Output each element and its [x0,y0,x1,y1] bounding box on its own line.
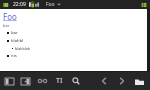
button[interactable]: Link [37,74,48,88]
button[interactable]: Text [54,74,65,88]
button[interactable]: Files [134,74,145,88]
button[interactable]: bar [3,29,145,37]
button[interactable]: Panel left [4,74,15,88]
staticText: 22:09 [13,1,26,8]
button[interactable]: Back [98,74,109,88]
button[interactable]: Search [70,74,81,88]
staticText: bar [3,23,10,28]
staticText: bar [11,30,18,36]
other: Signal [29,1,40,8]
button[interactable]: blahblah [3,45,145,52]
button[interactable]: Status [138,2,150,8]
button[interactable]: blahbl [3,37,145,45]
staticText: blahbl [11,38,24,44]
staticText: Foo [3,11,17,22]
button[interactable]: Foo [45,1,62,8]
staticText: blahblah [15,46,31,51]
button[interactable]: Panel right [20,74,31,88]
other: App [3,2,9,8]
button[interactable]: nis [3,52,145,60]
button[interactable]: Foo [3,11,17,22]
staticText: Foo [46,1,55,8]
staticText: nis [11,53,17,59]
staticText: TI [56,76,63,86]
button[interactable]: Forward [116,74,127,88]
